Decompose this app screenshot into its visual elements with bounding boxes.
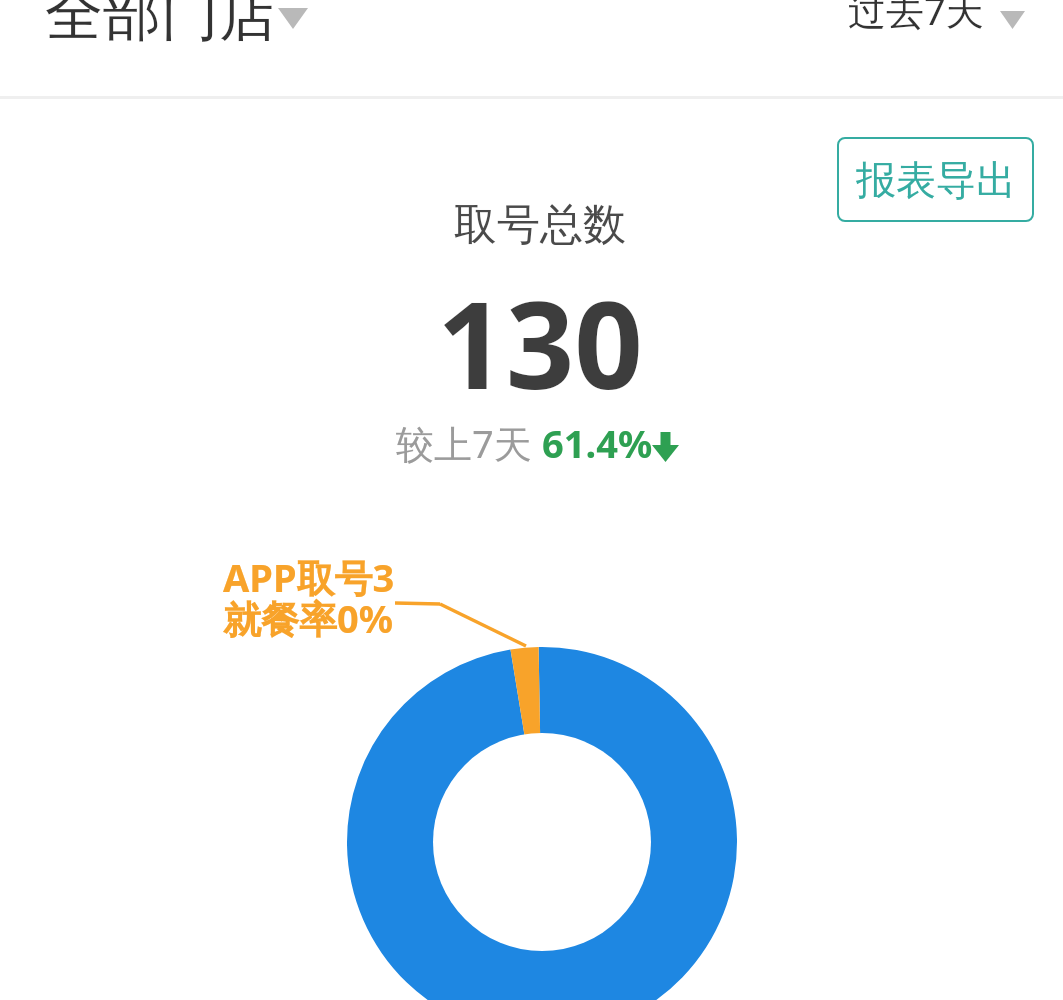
staticText: 取号总数 [454,198,626,252]
button[interactable]: 报表导出 [837,137,1034,222]
staticText: APP取号3 就餐率0% [223,551,395,645]
button[interactable] [40,0,320,60]
staticText: 过去7天 [848,0,984,36]
staticText: 报表导出 [856,155,1016,205]
staticText: 全部门店 [45,0,277,51]
button[interactable]: 过去7天 [848,0,984,36]
staticText: 130 [437,261,643,424]
staticText: 较上7天 [396,417,532,469]
staticText: 61.4% [542,417,653,469]
